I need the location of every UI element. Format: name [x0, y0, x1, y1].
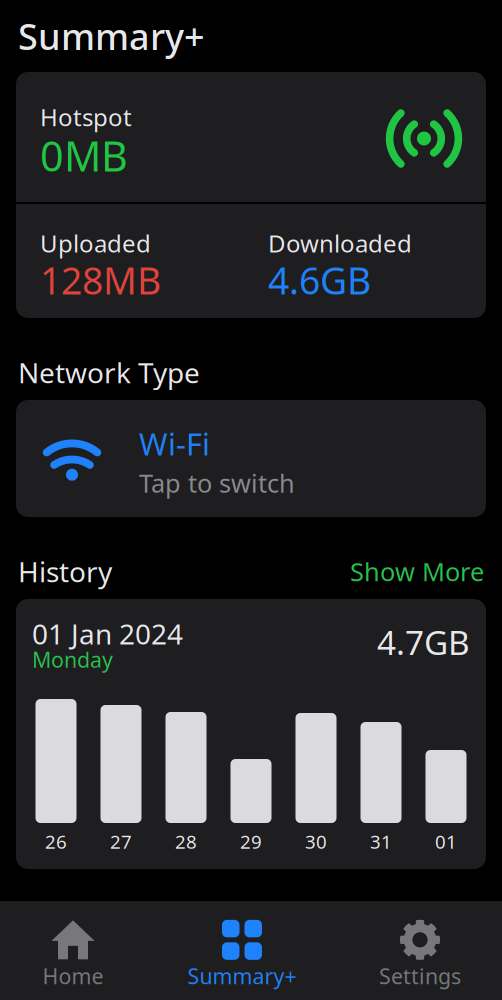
button[interactable]: Home [0, 901, 146, 1000]
staticText: Summary+ [18, 12, 205, 60]
staticText: Settings [379, 962, 461, 990]
staticText: Monday [32, 645, 113, 673]
staticText: 29 [240, 829, 262, 854]
staticText: 28 [175, 829, 197, 854]
staticText: Show More [350, 555, 484, 588]
staticText: Tap to switch [139, 466, 295, 500]
staticText: 128MB [40, 255, 161, 305]
staticText: Wi-Fi [139, 423, 210, 464]
button[interactable]: Summary+ [146, 901, 338, 1000]
button[interactable]: Settings [338, 901, 502, 1000]
staticText: 01 [435, 829, 457, 854]
staticText: 0MB [40, 128, 128, 183]
staticText: 4.7GB [377, 620, 470, 664]
staticText: Uploaded [40, 227, 151, 259]
staticText: 4.6GB [268, 255, 371, 305]
staticText: 26 [45, 829, 67, 854]
staticText: Downloaded [268, 227, 412, 259]
staticText: Home [42, 962, 103, 990]
staticText: 27 [110, 829, 132, 854]
staticText: 31 [370, 829, 392, 854]
staticText: 30 [305, 829, 327, 854]
staticText: Hotspot [40, 101, 132, 133]
staticText: 01 Jan 2024 [32, 615, 183, 652]
button[interactable]: Wi-Fi [0, 400, 502, 517]
staticText: History [18, 553, 112, 590]
button[interactable]: Show More [350, 555, 484, 588]
staticText: Summary+ [187, 962, 296, 990]
staticText: Network Type [18, 354, 200, 391]
